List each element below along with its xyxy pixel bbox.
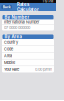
staticText: Back bbox=[3, 5, 11, 9]
button[interactable]: Back bbox=[1, 5, 12, 9]
staticText: 0.00 p/min bbox=[35, 67, 52, 72]
staticText: International Number bbox=[4, 20, 39, 24]
staticText: By Number bbox=[4, 15, 29, 20]
staticText: Your Rate bbox=[4, 67, 19, 72]
staticText: 1:19 PM bbox=[42, 0, 53, 3]
staticText: Country bbox=[4, 40, 18, 45]
staticText: Mobile bbox=[4, 60, 15, 65]
staticText: 07 0000 000000 bbox=[4, 25, 30, 30]
staticText: Code bbox=[4, 47, 13, 51]
staticText: Rates Calculator bbox=[17, 2, 39, 12]
staticText: By Area bbox=[4, 34, 21, 39]
staticText: Area bbox=[4, 53, 12, 58]
